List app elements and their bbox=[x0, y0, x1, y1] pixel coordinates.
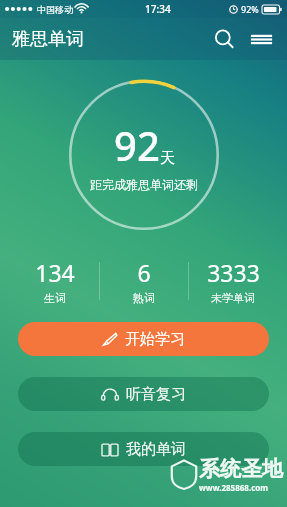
staticText: 3333 bbox=[207, 257, 260, 288]
staticText: 134 bbox=[35, 257, 75, 288]
staticText: 熟词 bbox=[133, 291, 155, 305]
staticText: 17:34 bbox=[145, 2, 171, 16]
staticText: 听音复习 bbox=[126, 385, 186, 404]
staticText: 未学单词 bbox=[211, 291, 255, 305]
staticText: 距完成雅思单词还剩 bbox=[90, 177, 198, 192]
button[interactable]: 6 bbox=[100, 257, 188, 305]
staticText: 92% bbox=[241, 3, 259, 15]
staticText: 系统圣地 bbox=[199, 456, 283, 482]
button[interactable]: 134 bbox=[10, 257, 99, 305]
staticText: 中国移动 bbox=[37, 4, 73, 15]
staticText: 天 bbox=[160, 149, 175, 168]
button[interactable]: 我的单词 bbox=[18, 432, 269, 466]
button[interactable]: Menu bbox=[247, 25, 275, 53]
staticText: 6 bbox=[137, 257, 151, 288]
staticText: 92 bbox=[114, 118, 160, 172]
staticText: 生词 bbox=[44, 291, 66, 305]
button[interactable]: 听音复习 bbox=[18, 377, 269, 411]
button[interactable]: 3333 bbox=[189, 257, 277, 305]
button[interactable]: 开始学习 bbox=[18, 322, 269, 356]
staticText: www.285868.com bbox=[199, 482, 269, 493]
staticText: 开始学习 bbox=[125, 330, 185, 349]
staticText: 我的单词 bbox=[126, 440, 186, 459]
staticText: 雅思单词 bbox=[12, 28, 84, 51]
button[interactable]: Search bbox=[210, 25, 238, 53]
